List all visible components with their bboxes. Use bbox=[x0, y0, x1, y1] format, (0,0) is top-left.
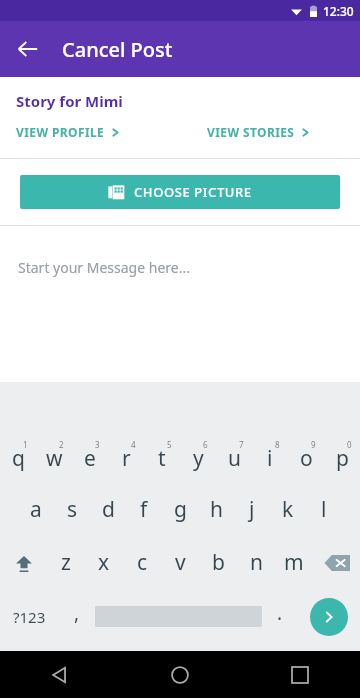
button[interactable]: c bbox=[123, 536, 161, 589]
staticText: 1 bbox=[23, 439, 28, 450]
staticText: p bbox=[336, 444, 349, 473]
button[interactable]: . bbox=[262, 589, 298, 644]
staticText: a bbox=[30, 495, 42, 524]
staticText: h bbox=[210, 495, 223, 524]
button[interactable]: , bbox=[59, 589, 95, 644]
staticText: g bbox=[174, 495, 187, 524]
staticText: 12:30 bbox=[323, 3, 354, 19]
staticText: o bbox=[300, 444, 313, 473]
button[interactable]: VIEW PROFILE bbox=[16, 122, 121, 142]
staticText: z bbox=[61, 548, 71, 577]
staticText: 5 bbox=[167, 439, 172, 450]
staticText: CHOOSE PICTURE bbox=[134, 183, 252, 201]
button[interactable]: Back bbox=[0, 651, 120, 698]
staticText: VIEW STORIES bbox=[207, 124, 295, 140]
staticText: , bbox=[74, 600, 80, 626]
button[interactable]: a bbox=[18, 483, 54, 536]
button[interactable]: n bbox=[237, 536, 275, 589]
button[interactable]: Start your Message here... bbox=[0, 226, 360, 382]
staticText: j bbox=[249, 495, 255, 524]
button[interactable]: Backspace bbox=[313, 536, 360, 589]
button[interactable]: b bbox=[199, 536, 237, 589]
button[interactable]: 6 bbox=[180, 430, 216, 483]
button[interactable]: s bbox=[54, 483, 90, 536]
staticText: u bbox=[228, 444, 241, 473]
button[interactable]: 9 bbox=[288, 430, 324, 483]
staticText: k bbox=[282, 495, 294, 524]
button[interactable]: Back bbox=[8, 29, 48, 69]
staticText: r bbox=[122, 444, 131, 473]
staticText: 8 bbox=[275, 439, 280, 450]
button[interactable]: VIEW STORIES bbox=[207, 122, 311, 142]
staticText: VIEW PROFILE bbox=[16, 124, 105, 140]
staticText: v bbox=[175, 548, 186, 577]
staticText: n bbox=[250, 548, 263, 577]
button[interactable]: j bbox=[234, 483, 270, 536]
button[interactable]: Send bbox=[298, 589, 360, 644]
staticText: y bbox=[193, 444, 204, 473]
staticText: 6 bbox=[203, 439, 208, 450]
button[interactable]: x bbox=[85, 536, 123, 589]
staticText: s bbox=[67, 495, 78, 524]
staticText: l bbox=[321, 495, 327, 524]
button[interactable]: Recent apps bbox=[240, 651, 360, 698]
button[interactable]: d bbox=[90, 483, 126, 536]
button[interactable]: m bbox=[275, 536, 313, 589]
button[interactable]: l bbox=[306, 483, 342, 536]
staticText: x bbox=[98, 548, 110, 577]
staticText: b bbox=[212, 548, 225, 577]
staticText: Cancel Post bbox=[62, 36, 173, 63]
staticText: Story for Mimi bbox=[16, 91, 123, 111]
button[interactable]: Space bbox=[95, 589, 262, 644]
button[interactable]: g bbox=[162, 483, 198, 536]
button[interactable]: 7 bbox=[216, 430, 252, 483]
button[interactable]: Shift bbox=[0, 536, 47, 589]
staticText: 0 bbox=[347, 439, 352, 450]
staticText: 2 bbox=[59, 439, 64, 450]
button[interactable]: 4 bbox=[108, 430, 144, 483]
staticText: 9 bbox=[311, 439, 316, 450]
staticText: c bbox=[137, 548, 148, 577]
button[interactable]: 3 bbox=[72, 430, 108, 483]
staticText: i bbox=[267, 444, 273, 473]
button[interactable]: z bbox=[47, 536, 85, 589]
button[interactable]: Home bbox=[120, 651, 240, 698]
staticText: 4 bbox=[131, 439, 136, 450]
staticText: ?123 bbox=[13, 607, 46, 627]
button[interactable]: 5 bbox=[144, 430, 180, 483]
staticText: Start your Message here... bbox=[18, 258, 190, 277]
button[interactable]: CHOOSE PICTURE bbox=[20, 175, 340, 209]
button[interactable]: 1 bbox=[0, 430, 36, 483]
button[interactable]: 2 bbox=[36, 430, 72, 483]
button[interactable]: ?123 bbox=[0, 589, 59, 644]
button[interactable]: f bbox=[126, 483, 162, 536]
button[interactable]: k bbox=[270, 483, 306, 536]
button[interactable]: v bbox=[161, 536, 199, 589]
staticText: e bbox=[84, 444, 96, 473]
staticText: f bbox=[140, 495, 148, 524]
staticText: q bbox=[12, 444, 25, 473]
button[interactable]: 0 bbox=[324, 430, 360, 483]
button[interactable]: h bbox=[198, 483, 234, 536]
staticText: w bbox=[46, 444, 63, 473]
staticText: . bbox=[277, 600, 283, 626]
staticText: t bbox=[158, 444, 166, 473]
button[interactable]: 8 bbox=[252, 430, 288, 483]
staticText: 3 bbox=[95, 439, 100, 450]
staticText: d bbox=[102, 495, 115, 524]
staticText: m bbox=[284, 548, 304, 577]
staticText: 7 bbox=[239, 439, 244, 450]
